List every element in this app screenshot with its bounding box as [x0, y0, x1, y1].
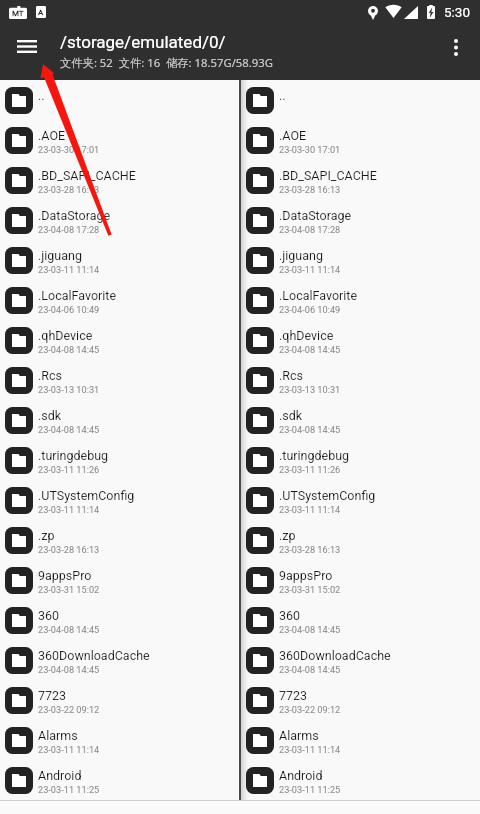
- staticText: .AOE: [38, 128, 66, 143]
- staticText: 7723: [38, 688, 67, 703]
- staticText: 23-04-06 10:49: [279, 304, 341, 315]
- button[interactable]: Alarms: [0, 720, 239, 760]
- button[interactable]: .DataStorage: [0, 200, 239, 240]
- button[interactable]: Android: [0, 760, 239, 800]
- button[interactable]: .UTSystemConfig: [0, 480, 239, 520]
- staticText: .UTSystemConfig: [279, 488, 376, 503]
- staticText: 23-03-11 11:14: [38, 264, 100, 275]
- button[interactable]: 7723: [241, 680, 480, 720]
- button[interactable]: 360: [241, 600, 480, 640]
- button[interactable]: .jiguang: [0, 240, 239, 280]
- staticText: .zp: [38, 528, 55, 543]
- staticText: 360DownloadCache: [279, 648, 391, 663]
- staticText: .qhDevice: [279, 328, 334, 343]
- staticText: .UTSystemConfig: [38, 488, 135, 503]
- staticText: A: [38, 8, 44, 17]
- staticText: ..: [38, 88, 45, 103]
- staticText: 23-03-28 16:13: [38, 544, 100, 555]
- staticText: 9appsPro: [38, 568, 92, 583]
- staticText: 23-03-22 09:12: [38, 704, 100, 715]
- staticText: .zp: [279, 528, 296, 543]
- staticText: 23-04-08 14:45: [38, 624, 100, 635]
- staticText: Android: [38, 768, 82, 783]
- button[interactable]: .sdk: [241, 400, 480, 440]
- button[interactable]: .turingdebug: [0, 440, 239, 480]
- button[interactable]: 9appsPro: [0, 560, 239, 600]
- staticText: 23-03-11 11:25: [38, 784, 100, 795]
- staticText: 23-03-11 11:14: [279, 264, 341, 275]
- staticText: .jiguang: [279, 248, 323, 263]
- staticText: 23-04-08 14:45: [38, 344, 100, 355]
- button[interactable]: More options: [434, 24, 478, 71]
- staticText: 23-03-11 11:14: [38, 504, 100, 515]
- staticText: 23-03-30 17:01: [279, 144, 341, 155]
- button[interactable]: .BD_SAPI_CACHE: [241, 160, 480, 200]
- button[interactable]: 7723: [0, 680, 239, 720]
- button[interactable]: Android: [241, 760, 480, 800]
- staticText: .AOE: [279, 128, 307, 143]
- button[interactable]: .qhDevice: [0, 320, 239, 360]
- staticText: 5:30: [444, 4, 471, 20]
- button[interactable]: .UTSystemConfig: [241, 480, 480, 520]
- staticText: .jiguang: [38, 248, 82, 263]
- button[interactable]: Menu: [3, 23, 50, 70]
- button[interactable]: .Rcs: [241, 360, 480, 400]
- staticText: 23-03-28 16:13: [38, 184, 100, 195]
- staticText: 23-03-11 11:14: [279, 504, 341, 515]
- staticText: 23-04-08 17:28: [38, 224, 100, 235]
- staticText: /storage/emulated/0/: [60, 32, 226, 52]
- button[interactable]: 360: [0, 600, 239, 640]
- staticText: 23-03-31 15:02: [279, 584, 341, 595]
- button[interactable]: .qhDevice: [241, 320, 480, 360]
- staticText: Android: [279, 768, 323, 783]
- staticText: 360: [38, 608, 60, 623]
- staticText: 23-03-11 11:26: [38, 464, 100, 475]
- staticText: 9appsPro: [279, 568, 333, 583]
- button[interactable]: 360DownloadCache: [241, 640, 480, 680]
- staticText: .Rcs: [279, 368, 303, 383]
- button[interactable]: .LocalFavorite: [0, 280, 239, 320]
- staticText: 23-03-11 11:14: [38, 744, 100, 755]
- staticText: .LocalFavorite: [38, 288, 117, 303]
- staticText: 23-04-08 14:45: [38, 664, 100, 675]
- button[interactable]: .DataStorage: [241, 200, 480, 240]
- staticText: 23-04-08 14:45: [279, 664, 341, 675]
- staticText: 23-04-08 14:45: [279, 624, 341, 635]
- staticText: .Rcs: [38, 368, 62, 383]
- staticText: 23-03-22 09:12: [279, 704, 341, 715]
- staticText: .sdk: [38, 408, 62, 423]
- staticText: 23-04-08 14:45: [38, 424, 100, 435]
- staticText: .turingdebug: [279, 448, 350, 463]
- staticText: 23-03-28 16:13: [279, 544, 341, 555]
- staticText: 23-03-28 16:13: [279, 184, 341, 195]
- button[interactable]: ..: [0, 80, 239, 120]
- staticText: Alarms: [38, 728, 78, 743]
- staticText: ..: [279, 88, 286, 103]
- button[interactable]: .jiguang: [241, 240, 480, 280]
- button[interactable]: 9appsPro: [241, 560, 480, 600]
- button[interactable]: .turingdebug: [241, 440, 480, 480]
- staticText: 7723: [279, 688, 308, 703]
- staticText: 23-03-30 17:01: [38, 144, 100, 155]
- staticText: 23-03-13 10:31: [38, 384, 100, 395]
- staticText: .LocalFavorite: [279, 288, 358, 303]
- staticText: .sdk: [279, 408, 303, 423]
- button[interactable]: Alarms: [241, 720, 480, 760]
- button[interactable]: .zp: [0, 520, 239, 560]
- button[interactable]: .sdk: [0, 400, 239, 440]
- button[interactable]: .AOE: [0, 120, 239, 160]
- button[interactable]: ..: [241, 80, 480, 120]
- button[interactable]: .LocalFavorite: [241, 280, 480, 320]
- button[interactable]: .zp: [241, 520, 480, 560]
- staticText: 23-03-13 10:31: [279, 384, 341, 395]
- staticText: 23-03-11 11:26: [279, 464, 341, 475]
- staticText: 23-04-08 14:45: [279, 424, 341, 435]
- button[interactable]: .AOE: [241, 120, 480, 160]
- button[interactable]: 360DownloadCache: [0, 640, 239, 680]
- staticText: 23-03-11 11:25: [279, 784, 341, 795]
- button[interactable]: .BD_SAPI_CACHE: [0, 160, 239, 200]
- staticText: 360: [279, 608, 301, 623]
- button[interactable]: .Rcs: [0, 360, 239, 400]
- staticText: .qhDevice: [38, 328, 93, 343]
- staticText: .BD_SAPI_CACHE: [38, 168, 136, 183]
